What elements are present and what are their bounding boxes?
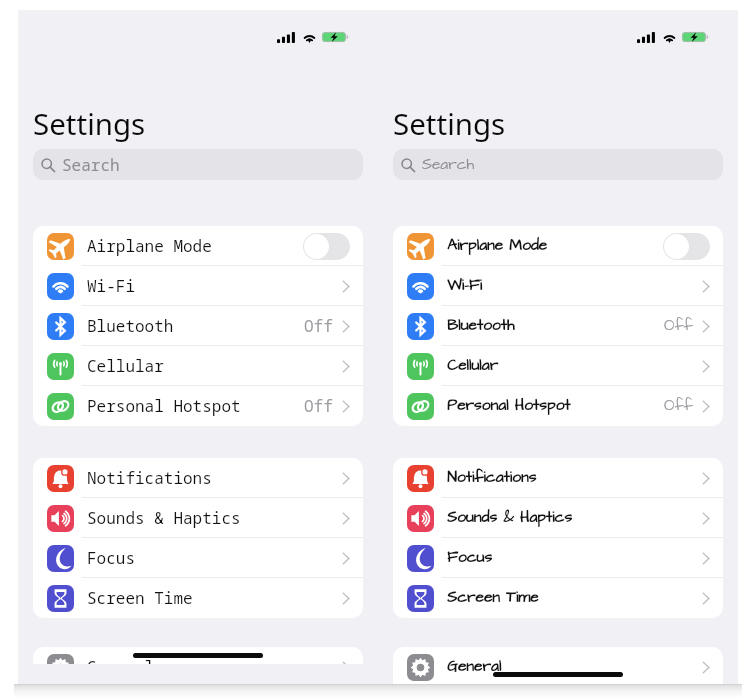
staticText: Wi-Fi (87, 275, 136, 297)
staticText: Bluetooth (447, 315, 515, 337)
button[interactable]: Notifications (393, 458, 723, 498)
button[interactable]: Airplane Mode (33, 226, 363, 266)
button[interactable]: Sounds & Haptics (33, 498, 363, 538)
staticText: Personal Hotspot (87, 395, 241, 417)
staticText: Sounds & Haptics (447, 507, 572, 529)
staticText: Screen Time (87, 587, 193, 609)
staticText: Search (422, 154, 475, 176)
staticText: Settings (393, 103, 506, 143)
button[interactable]: Toggle Airplane Mode (303, 233, 350, 260)
button[interactable]: Bluetooth (33, 306, 363, 346)
button[interactable]: Bluetooth (393, 306, 723, 346)
button[interactable]: Personal Hotspot (33, 386, 363, 426)
staticText: Search (62, 154, 120, 176)
staticText: Off (304, 315, 333, 337)
staticText: Focus (447, 547, 492, 569)
button[interactable]: Cellular (393, 346, 723, 386)
staticText: Screen Time (447, 587, 539, 609)
button[interactable]: Sounds & Haptics (393, 498, 723, 538)
staticText: Off (664, 395, 693, 417)
staticText: Cellular (447, 355, 498, 377)
staticText: Notifications (87, 467, 212, 489)
staticText: Cellular (87, 355, 164, 377)
staticText: Airplane Mode (447, 235, 547, 257)
staticText: General (87, 656, 155, 664)
staticText: Notifications (447, 467, 537, 489)
button[interactable]: Search (393, 149, 723, 180)
button[interactable]: Wi-Fi (33, 266, 363, 306)
staticText: Focus (87, 547, 136, 569)
button[interactable]: Focus (393, 538, 723, 578)
button[interactable]: Screen Time (393, 578, 723, 618)
button[interactable]: Screen Time (33, 578, 363, 618)
staticText: Settings (33, 103, 146, 143)
button[interactable]: Toggle Airplane Mode (663, 233, 710, 260)
button[interactable]: Cellular (33, 346, 363, 386)
button[interactable]: Airplane Mode (393, 226, 723, 266)
button[interactable]: Wi-Fi (393, 266, 723, 306)
staticText: Wi-Fi (447, 275, 482, 297)
staticText: Airplane Mode (87, 235, 212, 257)
staticText: General (447, 656, 502, 678)
staticText: Sounds & Haptics (87, 507, 241, 529)
button[interactable]: General (33, 647, 363, 664)
staticText: Bluetooth (87, 315, 174, 337)
button[interactable]: Focus (33, 538, 363, 578)
staticText: Off (304, 395, 333, 417)
button[interactable]: Personal Hotspot (393, 386, 723, 426)
button[interactable]: General (393, 647, 723, 684)
staticText: Personal Hotspot (447, 395, 571, 417)
button[interactable]: Search (33, 149, 363, 180)
staticText: Off (664, 315, 693, 337)
button[interactable]: Notifications (33, 458, 363, 498)
